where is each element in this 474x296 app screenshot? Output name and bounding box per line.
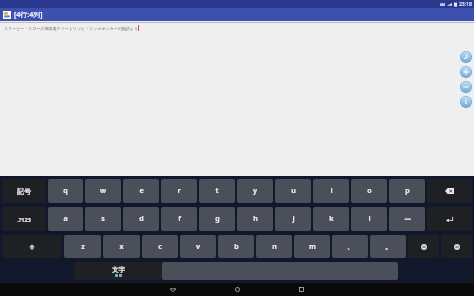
- staticText: q: [63, 186, 68, 196]
- button[interactable]: b: [218, 235, 254, 258]
- button[interactable]: x: [103, 235, 140, 258]
- button[interactable]: y: [237, 179, 273, 203]
- staticText: 、: [347, 242, 354, 251]
- button[interactable]: k: [313, 207, 349, 231]
- button[interactable]: Symbol: [408, 235, 439, 258]
- staticText: n: [272, 242, 277, 252]
- staticText: d: [139, 214, 144, 224]
- staticText: h: [253, 214, 258, 224]
- button[interactable]: j: [275, 207, 311, 231]
- button[interactable]: i: [313, 179, 349, 203]
- staticText: s: [101, 214, 105, 224]
- button[interactable]: e: [123, 179, 159, 203]
- staticText: o: [367, 186, 372, 196]
- staticText: スリーピー・スローの地獄遺ディードリッヒ・ニッカボッカーの物語より: [4, 26, 138, 31]
- button[interactable]: Symbol: [441, 235, 472, 258]
- staticText: 。: [385, 242, 392, 251]
- staticText: t: [215, 186, 219, 196]
- button[interactable]: w: [85, 179, 121, 203]
- staticText: 23:18: [459, 1, 472, 8]
- button[interactable]: Move: [460, 66, 472, 78]
- button[interactable]: t: [199, 179, 235, 203]
- staticText: [4行:4列]: [14, 10, 43, 20]
- button[interactable]: Backspace: [427, 179, 472, 203]
- button[interactable]: Back: [166, 283, 179, 296]
- button[interactable]: Recents: [295, 283, 308, 296]
- button[interactable]: m: [294, 235, 330, 258]
- staticText: 記号: [17, 187, 31, 196]
- staticText: e: [139, 186, 144, 196]
- staticText: j: [292, 214, 295, 224]
- button[interactable]: ー: [389, 207, 425, 231]
- staticText: ー: [404, 215, 411, 224]
- button[interactable]: r: [161, 179, 197, 203]
- button[interactable]: Shift: [2, 235, 62, 258]
- button[interactable]: .?123: [2, 207, 46, 231]
- button[interactable]: c: [142, 235, 178, 258]
- staticText: b: [234, 242, 239, 252]
- button[interactable]: Forward: [460, 81, 472, 93]
- button[interactable]: q: [48, 179, 83, 203]
- button[interactable]: g: [199, 207, 235, 231]
- staticText: w: [100, 186, 106, 196]
- button[interactable]: 、: [332, 235, 368, 258]
- staticText: .?123: [17, 216, 31, 223]
- button[interactable]: h: [237, 207, 273, 231]
- staticText: y: [253, 186, 257, 196]
- button[interactable]: u: [275, 179, 311, 203]
- button[interactable]: d: [123, 207, 159, 231]
- button[interactable]: s: [85, 207, 121, 231]
- staticText: r: [177, 186, 181, 196]
- button[interactable]: 。: [370, 235, 406, 258]
- staticText: v: [196, 242, 200, 252]
- button[interactable]: a: [48, 207, 83, 231]
- staticText: m: [309, 242, 316, 252]
- button[interactable]: p: [389, 179, 425, 203]
- staticText: x: [119, 242, 124, 252]
- button[interactable]: 記号: [2, 179, 46, 203]
- staticText: z: [81, 242, 85, 252]
- staticText: p: [405, 186, 410, 196]
- button[interactable]: 文字: [74, 262, 162, 280]
- button[interactable]: Home: [231, 283, 244, 296]
- button[interactable]: Down: [460, 96, 472, 108]
- button[interactable]: o: [351, 179, 387, 203]
- staticText: i: [330, 186, 333, 196]
- button[interactable]: n: [256, 235, 292, 258]
- button[interactable]: f: [161, 207, 197, 231]
- staticText: g: [215, 214, 220, 224]
- button[interactable]: z: [64, 235, 101, 258]
- button[interactable]: v: [180, 235, 216, 258]
- staticText: a: [63, 214, 68, 224]
- staticText: u: [291, 186, 296, 196]
- button[interactable]: Undo: [460, 51, 472, 63]
- staticText: l: [368, 214, 371, 224]
- staticText: c: [158, 242, 162, 252]
- staticText: f: [178, 214, 181, 224]
- button[interactable]: Enter: [427, 207, 472, 231]
- staticText: 文字: [112, 266, 125, 274]
- staticText: k: [329, 214, 334, 224]
- button[interactable]: l: [351, 207, 387, 231]
